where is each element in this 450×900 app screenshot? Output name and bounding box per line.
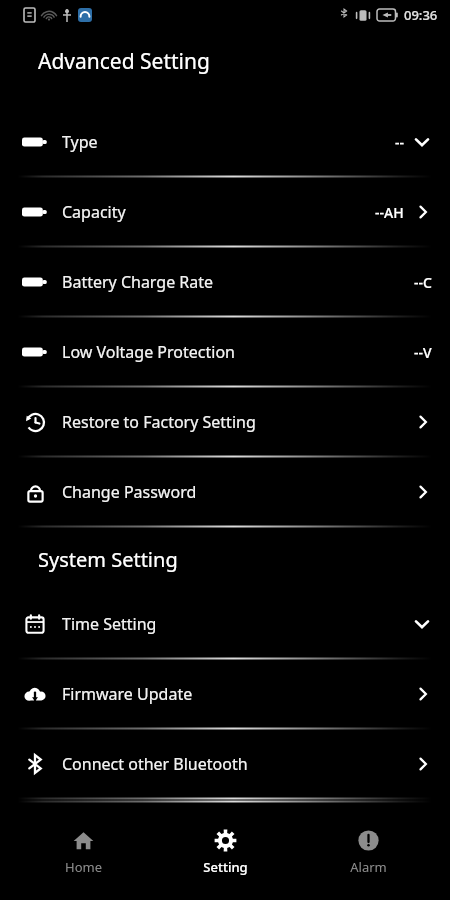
staticText: 09:36: [404, 6, 438, 24]
staticText: Advanced Setting: [38, 47, 210, 76]
other: Setting: [214, 829, 237, 852]
staticText: Restore to Factory Setting: [62, 411, 256, 433]
staticText: Connect other Bluetooth: [62, 753, 248, 775]
staticText: Type: [62, 131, 98, 153]
staticText: Home: [65, 858, 102, 876]
button[interactable]: Type: [0, 108, 450, 175]
button[interactable]: Battery Charge Rate: [0, 248, 450, 315]
staticText: --: [395, 133, 404, 152]
staticText: Change Password: [62, 481, 197, 503]
button[interactable]: Home: [23, 822, 143, 882]
staticText: --AH: [375, 203, 404, 222]
button[interactable]: Restore to Factory Setting: [0, 388, 450, 455]
button[interactable]: Firmware Update: [0, 660, 450, 727]
button[interactable]: Time Setting: [0, 590, 450, 657]
other: Alarm: [357, 829, 380, 852]
staticText: Setting: [203, 858, 248, 876]
button[interactable]: Alarm: [308, 822, 428, 882]
button[interactable]: Connect other Bluetooth: [0, 730, 450, 797]
staticText: Battery Charge Rate: [62, 271, 214, 293]
button[interactable]: Low Voltage Protection: [0, 318, 450, 385]
staticText: Alarm: [350, 858, 387, 876]
other: Home: [72, 829, 95, 852]
staticText: --C: [414, 273, 432, 292]
staticText: System Setting: [38, 546, 178, 573]
staticText: Low Voltage Protection: [62, 341, 235, 363]
button[interactable]: Capacity: [0, 178, 450, 245]
staticText: Capacity: [62, 201, 126, 223]
button[interactable]: Setting: [165, 822, 285, 882]
staticText: Time Setting: [62, 613, 157, 635]
staticText: Firmware Update: [62, 683, 193, 705]
staticText: --V: [414, 343, 432, 362]
button[interactable]: Change Password: [0, 458, 450, 525]
